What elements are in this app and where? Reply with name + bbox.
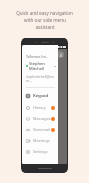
staticText: Stephen Mitchell xyxy=(29,61,55,71)
staticText: Meetings xyxy=(33,138,50,143)
staticText: Settings xyxy=(33,149,48,154)
staticText: with our side menu xyxy=(24,17,66,23)
staticText: Keypad xyxy=(33,93,49,99)
button[interactable]: Messages xyxy=(26,113,55,124)
staticText: History xyxy=(33,105,46,110)
staticText: Messages xyxy=(33,116,51,121)
button[interactable]: Profile xyxy=(57,51,64,58)
button[interactable]: Meetings xyxy=(26,135,55,146)
staticText: Quick and easy navigation xyxy=(16,10,73,16)
button[interactable]: Voicemail xyxy=(26,124,55,135)
button[interactable]: Stephen Mitchell xyxy=(26,61,55,71)
staticText: stephmitchell@team... xyxy=(26,75,55,83)
button[interactable]: History xyxy=(26,102,55,113)
button[interactable]: Settings xyxy=(26,146,55,157)
staticText: Talkmate Inc.. xyxy=(26,54,48,59)
staticText: Voicemail xyxy=(33,127,51,132)
staticText: assistant xyxy=(35,24,55,30)
button[interactable]: Keypad xyxy=(26,93,55,99)
